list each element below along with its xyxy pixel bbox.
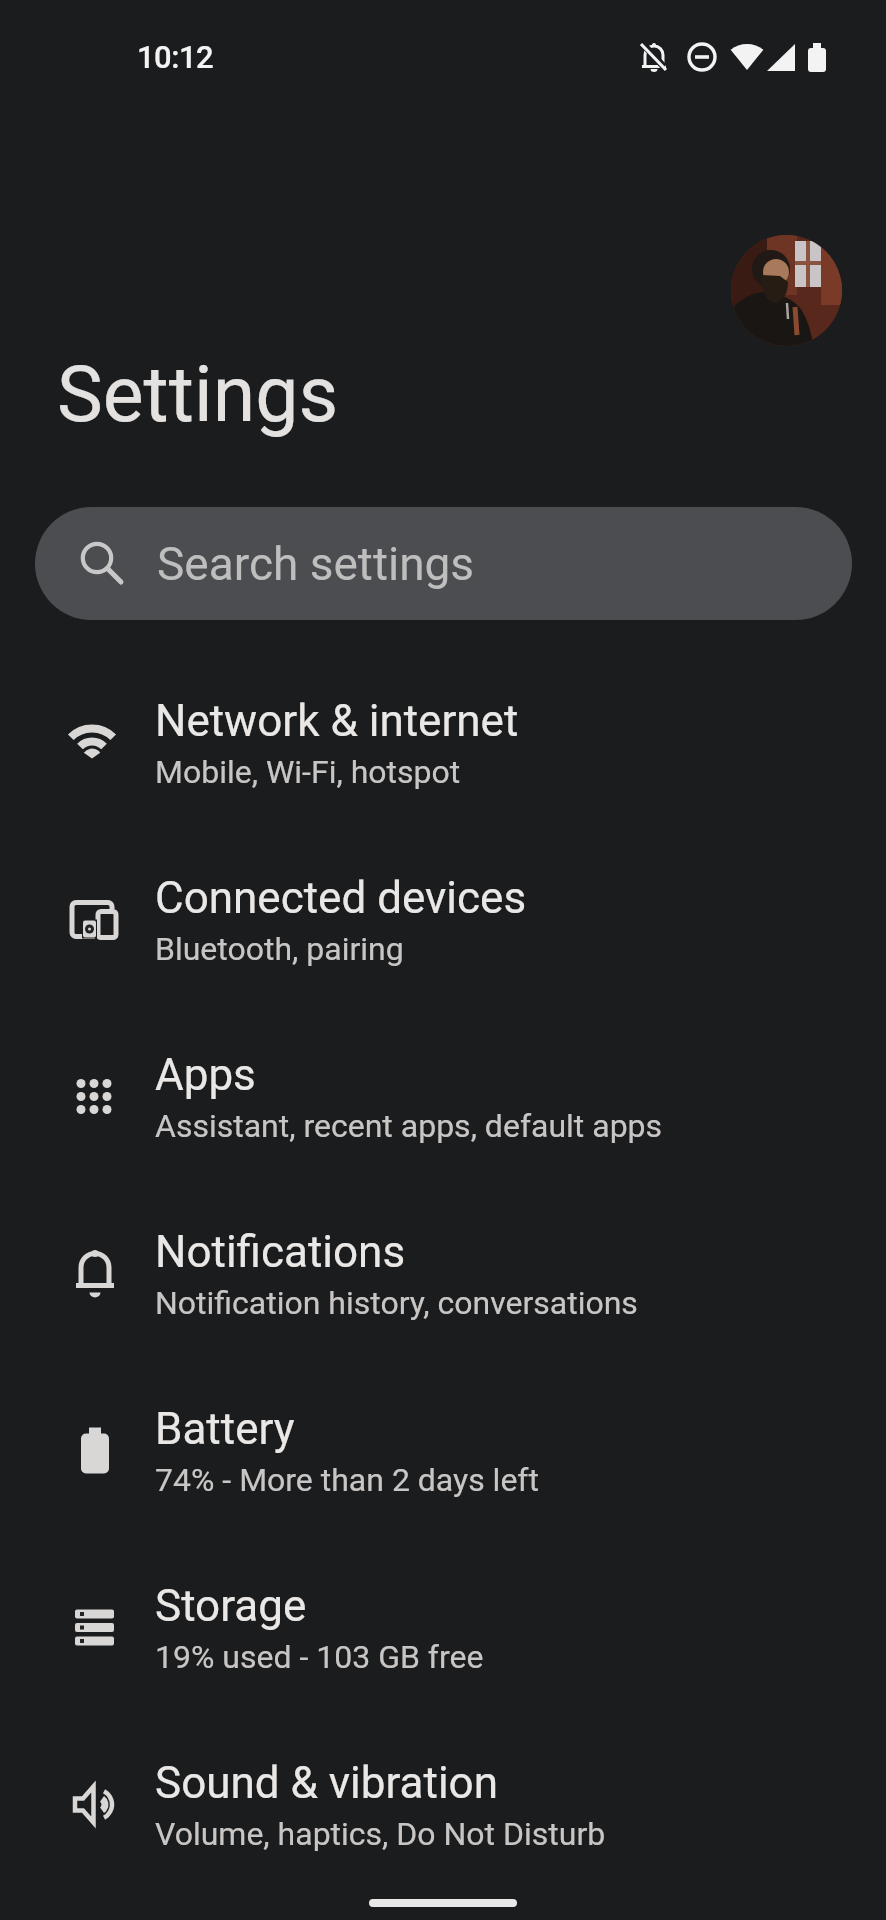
staticText: Assistant, recent apps, default apps [155, 1107, 663, 1145]
button[interactable]: Apps [0, 1012, 886, 1189]
staticText: Storage [155, 1580, 307, 1632]
button[interactable] [731, 235, 842, 346]
button[interactable]: Search settings [35, 507, 852, 620]
button[interactable]: Battery [0, 1366, 886, 1543]
staticText: Bluetooth, pairing [155, 930, 404, 968]
staticText: 19% used - 103 GB free [155, 1638, 484, 1676]
staticText: Notification history, conversations [155, 1284, 638, 1322]
staticText: Battery [155, 1403, 295, 1455]
button[interactable]: Notifications [0, 1189, 886, 1366]
staticText: Search settings [157, 537, 475, 591]
button[interactable]: Network & internet [0, 658, 886, 835]
staticText: Sound & vibration [155, 1757, 498, 1809]
button[interactable]: Connected devices [0, 835, 886, 1012]
staticText: Connected devices [155, 872, 527, 924]
staticText: 10:12 [137, 39, 214, 75]
staticText: Volume, haptics, Do Not Disturb [155, 1815, 606, 1853]
staticText: Settings [57, 350, 339, 440]
staticText: Mobile, Wi-Fi, hotspot [155, 753, 461, 791]
staticText: Network & internet [155, 695, 519, 747]
button[interactable]: Sound & vibration [0, 1720, 886, 1897]
staticText: Apps [155, 1049, 256, 1101]
button[interactable]: Storage [0, 1543, 886, 1720]
staticText: 74% - More than 2 days left [155, 1461, 539, 1499]
staticText: Notifications [155, 1226, 406, 1278]
